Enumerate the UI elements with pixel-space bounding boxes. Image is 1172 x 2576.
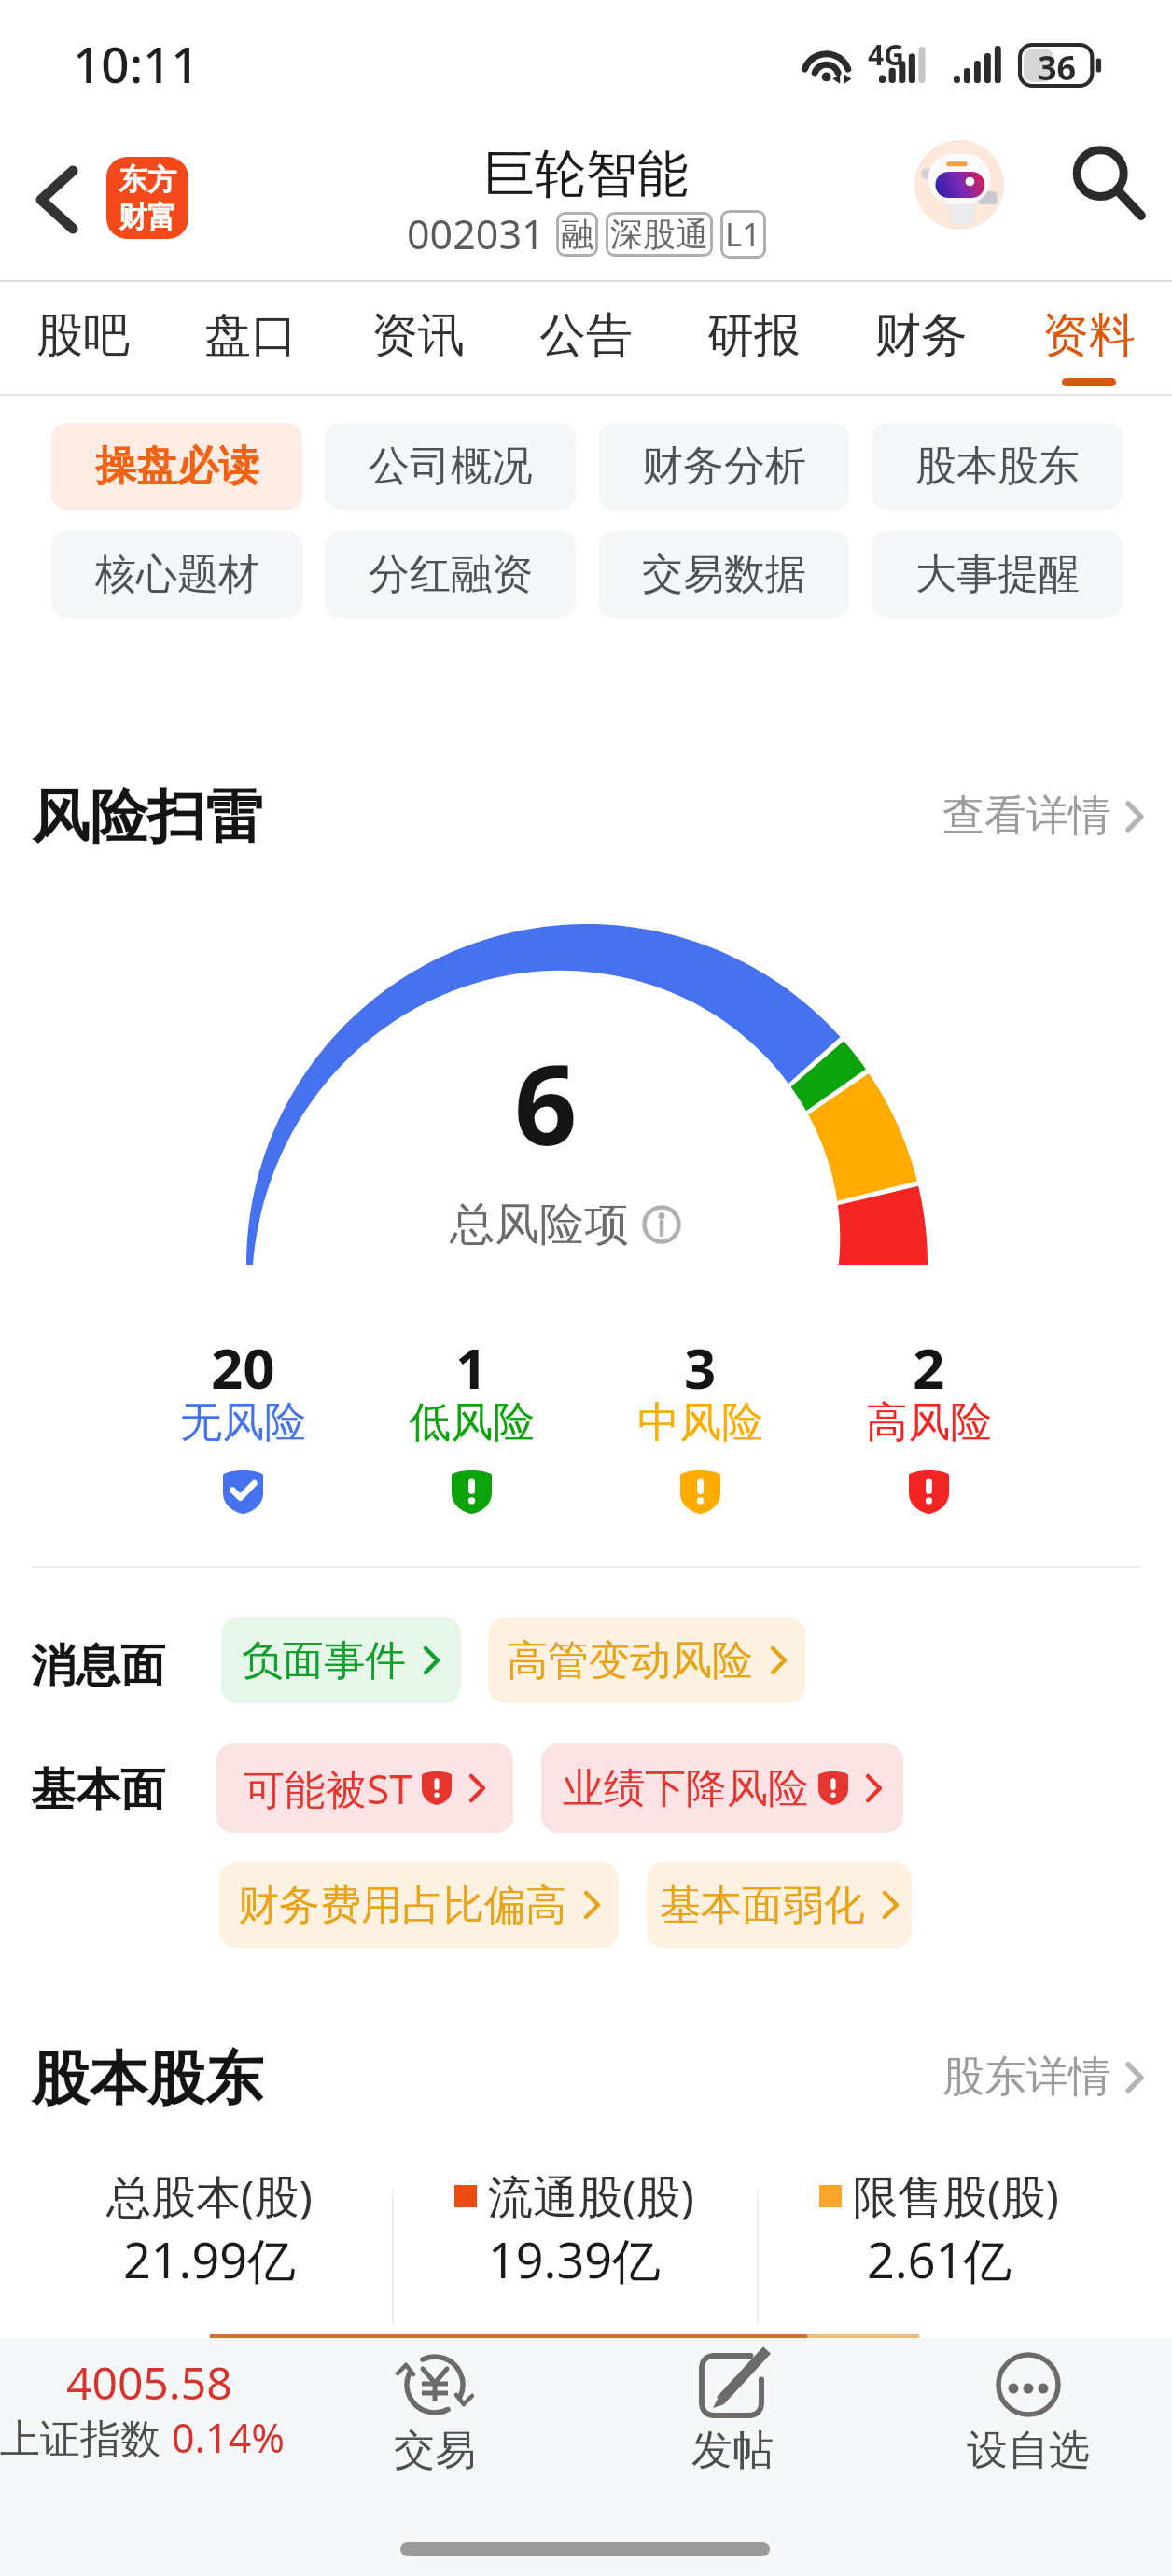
- button[interactable]: 操盘必读: [51, 423, 302, 510]
- staticText: 交易数据: [642, 549, 806, 600]
- button[interactable]: 资讯: [356, 280, 481, 386]
- staticText: 操盘必读: [95, 441, 259, 492]
- staticText: 3: [684, 1329, 717, 1406]
- button[interactable]: 基本面弱化: [647, 1862, 912, 1948]
- staticText: 发帖: [691, 2425, 774, 2476]
- staticText: 19.39亿: [488, 2226, 661, 2292]
- staticText: 巨轮智能: [483, 142, 689, 206]
- staticText: 业绩下降风险: [563, 1763, 809, 1814]
- staticText: 盘口: [204, 306, 298, 365]
- staticText: 中风险: [637, 1396, 763, 1449]
- staticText: 大事提醒: [915, 549, 1080, 600]
- staticText: 4005.58: [66, 2352, 232, 2413]
- staticText: 可能被ST: [244, 1760, 412, 1816]
- staticText: 融: [561, 214, 593, 255]
- staticText: 公告: [539, 306, 633, 365]
- staticText: 查看详情: [942, 790, 1110, 843]
- staticText: 设自选: [967, 2425, 1090, 2476]
- staticText: 低风险: [409, 1396, 535, 1449]
- staticText: 股吧: [36, 306, 130, 365]
- button[interactable]: Search: [1067, 141, 1149, 223]
- button[interactable]: 公司概况: [325, 423, 576, 510]
- staticText: 21.99亿: [123, 2226, 296, 2292]
- button[interactable]: 设自选: [954, 2352, 1103, 2476]
- staticText: 股东详情: [942, 2051, 1110, 2104]
- staticText: 研报: [707, 306, 801, 365]
- staticText: 4G: [868, 35, 904, 74]
- button[interactable]: East Money home: [106, 157, 188, 239]
- button[interactable]: 大事提醒: [872, 531, 1123, 618]
- button[interactable]: 交易数据: [598, 531, 849, 618]
- staticText: 基本面: [31, 1762, 165, 1818]
- staticText: 2.61亿: [867, 2226, 1012, 2292]
- staticText: 东方: [119, 161, 176, 198]
- button[interactable]: 4005.58: [0, 2343, 299, 2483]
- button[interactable]: 3: [586, 1329, 815, 1525]
- button[interactable]: 负面事件: [221, 1617, 461, 1703]
- button[interactable]: 资料: [1026, 280, 1151, 386]
- staticText: 002031: [407, 206, 545, 261]
- staticText: 高管变动风险: [507, 1635, 753, 1687]
- button[interactable]: AI assistant: [914, 140, 1004, 230]
- staticText: 0.14%: [172, 2410, 286, 2465]
- staticText: 总股本(股): [106, 2165, 313, 2227]
- staticText: 财富: [119, 199, 176, 235]
- button[interactable]: 股本股东: [872, 423, 1123, 510]
- button[interactable]: Back: [19, 159, 95, 241]
- staticText: 基本面弱化: [660, 1880, 865, 1931]
- staticText: 总风险项: [450, 1197, 629, 1253]
- staticText: 公司概况: [369, 441, 533, 492]
- button[interactable]: 财务费用占比偏高: [219, 1862, 619, 1948]
- button[interactable]: 公告: [523, 280, 649, 386]
- staticText: 限售股(股): [853, 2165, 1059, 2227]
- button[interactable]: 业绩下降风险: [541, 1743, 903, 1833]
- staticText: 负面事件: [242, 1635, 406, 1687]
- button[interactable]: 研报: [691, 280, 816, 386]
- staticText: 上证指数: [0, 2410, 172, 2465]
- staticText: 交易: [394, 2425, 476, 2476]
- staticText: 风险扫雷: [32, 780, 263, 853]
- button[interactable]: 高管变动风险: [488, 1617, 805, 1703]
- button[interactable]: 可能被ST: [216, 1743, 513, 1833]
- staticText: 财务: [874, 306, 968, 365]
- button[interactable]: 股吧: [21, 280, 146, 386]
- button[interactable]: 发帖: [658, 2352, 807, 2476]
- staticText: 财务费用占比偏高: [238, 1880, 566, 1931]
- button[interactable]: 财务: [858, 280, 984, 386]
- staticText: 股本股东: [915, 441, 1080, 492]
- button[interactable]: 盘口: [188, 280, 314, 386]
- staticText: 20: [211, 1329, 275, 1406]
- staticText: 股本股东: [32, 2042, 263, 2115]
- staticText: 36: [1038, 45, 1077, 91]
- staticText: 财务分析: [642, 441, 806, 492]
- staticText: 深股通: [610, 214, 708, 255]
- staticText: 6: [514, 1028, 578, 1178]
- staticText: 核心题材: [95, 549, 259, 600]
- button[interactable]: 20: [129, 1329, 357, 1525]
- staticText: 分红融资: [369, 549, 533, 600]
- button[interactable]: 2: [815, 1329, 1043, 1525]
- button[interactable]: 核心题材: [51, 531, 302, 618]
- staticText: 10:11: [73, 30, 200, 97]
- staticText: 高风险: [866, 1396, 992, 1449]
- staticText: L1: [725, 212, 761, 257]
- staticText: 资料: [1042, 306, 1136, 365]
- staticText: 无风险: [180, 1396, 306, 1449]
- button[interactable]: 查看详情: [935, 782, 1151, 850]
- button[interactable]: 分红融资: [325, 531, 576, 618]
- button[interactable]: 财务分析: [598, 423, 849, 510]
- button[interactable]: 交易: [360, 2352, 509, 2476]
- button[interactable]: 股东详情: [935, 2043, 1151, 2111]
- staticText: 1: [455, 1329, 488, 1406]
- staticText: 流通股(股): [488, 2165, 694, 2227]
- staticText: 消息面: [31, 1638, 165, 1694]
- staticText: 2: [913, 1329, 945, 1406]
- staticText: 资讯: [371, 306, 465, 365]
- button[interactable]: 1: [357, 1329, 586, 1525]
